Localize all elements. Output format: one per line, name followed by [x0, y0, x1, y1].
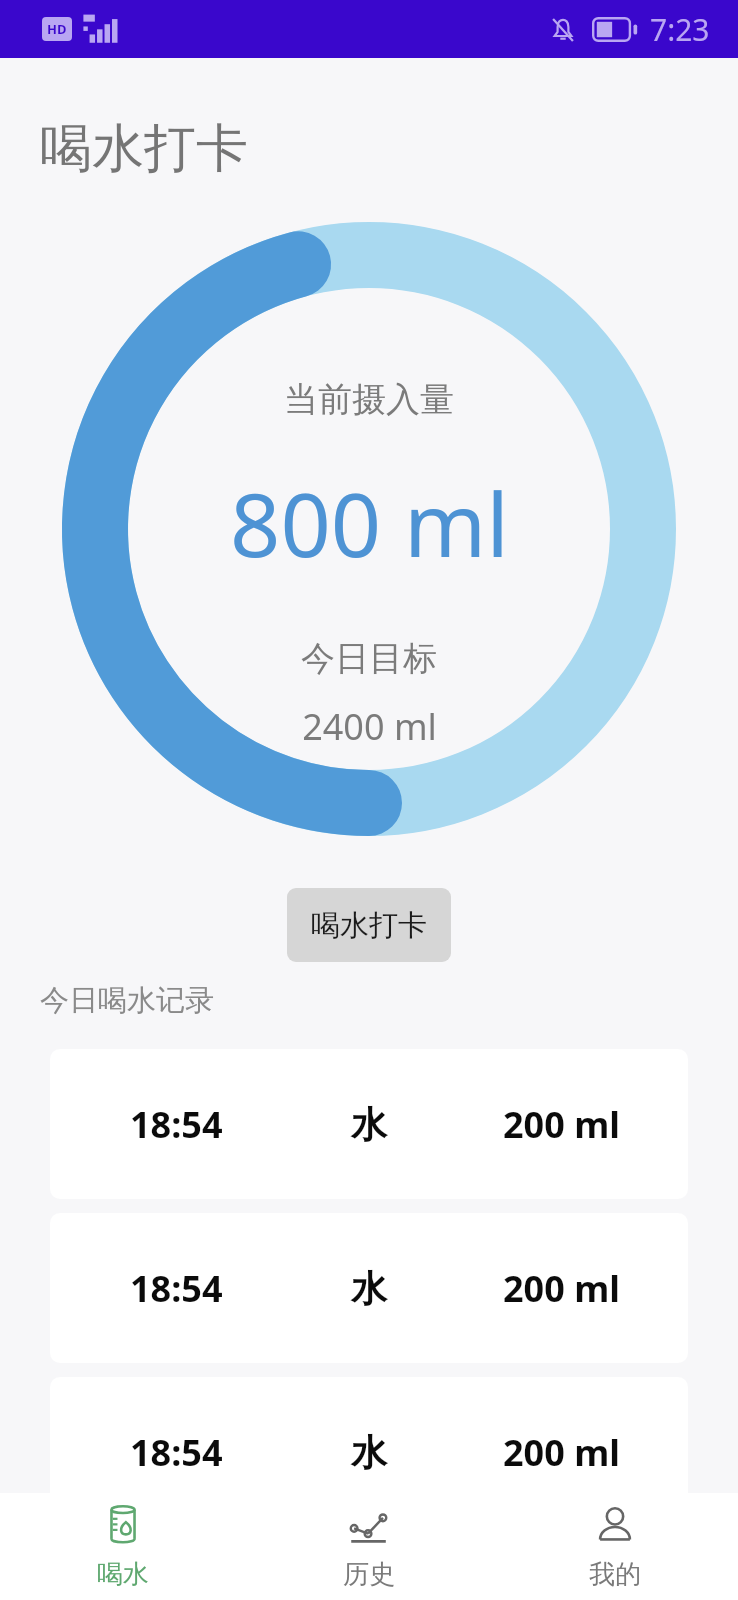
button[interactable]: 18:54 — [50, 1377, 688, 1527]
staticText: 当前摄入量 — [284, 378, 454, 421]
staticText: 水 — [351, 1266, 387, 1311]
staticText: 历史 — [343, 1558, 395, 1591]
staticText: 喝水打卡 — [40, 116, 248, 182]
button[interactable]: 我的 — [492, 1493, 738, 1600]
staticText: 200 ml — [503, 1428, 620, 1477]
staticText: HD — [47, 20, 67, 38]
staticText: 800 ml — [230, 463, 509, 583]
staticText: 水 — [351, 1102, 387, 1147]
staticText: 200 ml — [503, 1100, 620, 1149]
staticText: 200 ml — [503, 1264, 620, 1313]
button[interactable]: 历史 — [246, 1493, 492, 1600]
staticText: 18:54 — [130, 1264, 223, 1313]
staticText: 喝水打卡 — [311, 907, 427, 944]
button[interactable]: 18:54 — [50, 1213, 688, 1363]
other: 静音 — [548, 15, 578, 45]
staticText: 水 — [351, 1430, 387, 1475]
button[interactable]: 喝水 — [0, 1493, 246, 1600]
staticText: 今日目标 — [301, 637, 437, 680]
staticText: 7:23 — [650, 9, 710, 50]
staticText: 我的 — [589, 1558, 641, 1591]
staticText: 喝水 — [97, 1558, 149, 1591]
staticText: 18:54 — [130, 1100, 223, 1149]
button[interactable]: 18:54 — [50, 1049, 688, 1199]
staticText: 2400 ml — [302, 702, 437, 751]
staticText: 今日喝水记录 — [40, 982, 214, 1019]
staticText: 18:54 — [130, 1428, 223, 1477]
button[interactable]: 喝水打卡 — [287, 888, 451, 962]
